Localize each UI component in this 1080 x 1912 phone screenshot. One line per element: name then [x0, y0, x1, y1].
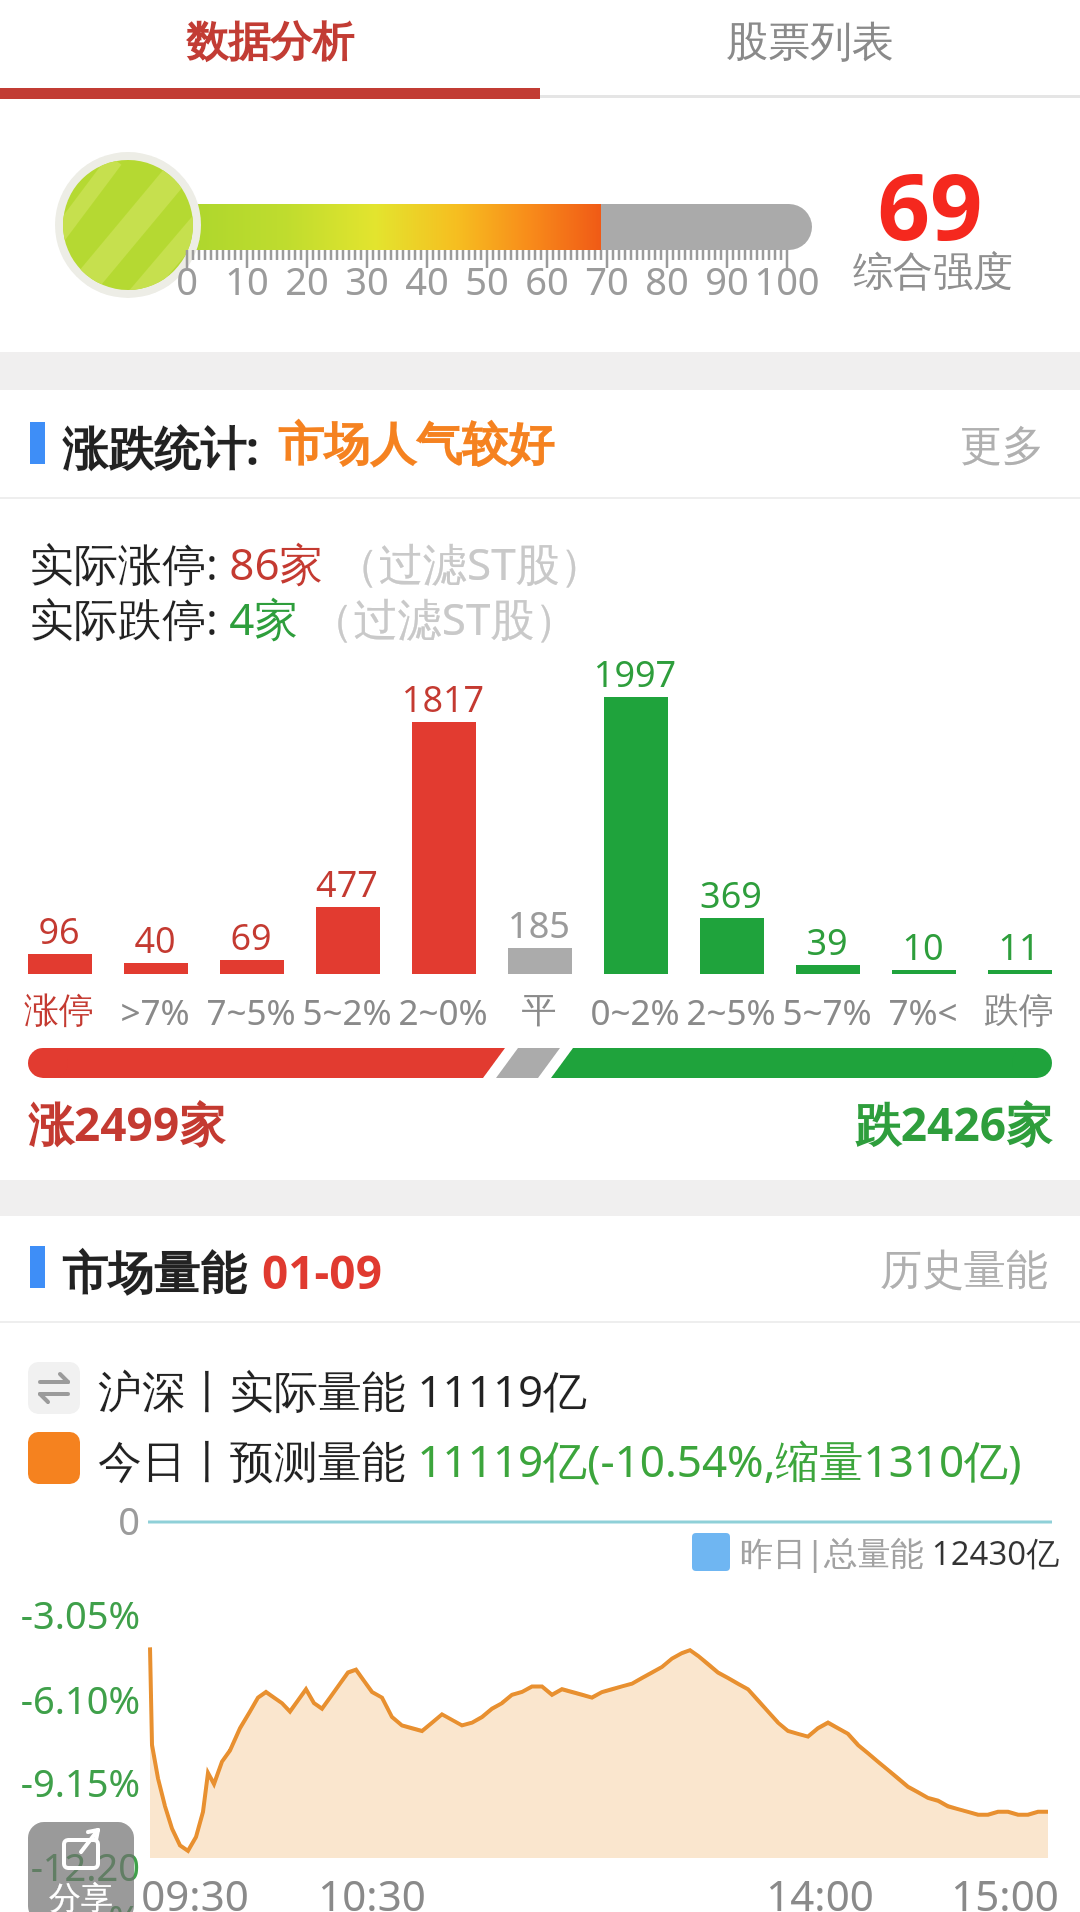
staticText: 分享 [28, 1878, 134, 1912]
staticText: -3.05% [20, 1588, 140, 1640]
staticText: 11 [959, 922, 1079, 971]
staticText: 15:00 [935, 1866, 1075, 1912]
staticText: -6.10% [20, 1673, 140, 1725]
staticText: 2~5% [671, 988, 791, 1036]
staticText: 历史量能 [880, 1244, 1048, 1297]
staticText: 09:30 [125, 1866, 265, 1912]
staticText: 7~5% [191, 988, 311, 1036]
staticText: 10 [863, 922, 983, 971]
staticText: 实际涨停: 86家 （过滤ST股） [30, 533, 604, 593]
button[interactable]: 数据分析 [0, 0, 540, 100]
staticText: 涨跌统计: [62, 416, 271, 479]
staticText: 5~7% [767, 988, 887, 1036]
staticText: 涨停 [0, 988, 119, 1032]
staticText: 涨2499家 [28, 1092, 226, 1155]
button[interactable]: 股票列表 [540, 0, 1080, 100]
staticText: 实际跌停: 4家 （过滤ST股） [30, 588, 579, 648]
staticText: 7%< [863, 988, 983, 1036]
staticText: 30 [317, 254, 417, 306]
staticText: 1997 [575, 649, 695, 698]
staticText: 69 [855, 142, 1005, 267]
staticText: 10 [197, 254, 297, 306]
staticText: >7% [95, 988, 215, 1036]
staticText: 39 [767, 917, 887, 966]
staticText: 01-09 [262, 1240, 382, 1303]
staticText: 14:00 [750, 1866, 890, 1912]
staticText: 80 [617, 254, 717, 306]
staticText: 市场人气较好 [278, 416, 554, 474]
staticText: 跌停 [959, 988, 1079, 1032]
button[interactable]: 市场量能 [0, 1216, 1080, 1324]
staticText: 数据分析 [0, 16, 540, 69]
staticText: 100 [737, 254, 837, 306]
staticText: 1817 [383, 674, 503, 723]
staticText: 跌2426家 [752, 1092, 1052, 1155]
staticText: 40 [377, 254, 477, 306]
staticText: 0~2% [575, 988, 695, 1036]
staticText: 市场量能 [62, 1240, 258, 1303]
staticText: 50 [437, 254, 537, 306]
staticText: 平 [479, 988, 599, 1032]
staticText: 60 [497, 254, 597, 306]
staticText: 0 [100, 1494, 140, 1546]
staticText: 0 [137, 254, 237, 306]
staticText: -12.20% [0, 1840, 140, 1912]
staticText: 96 [0, 906, 119, 955]
staticText: 477 [287, 859, 407, 908]
button[interactable]: 分享 [28, 1822, 134, 1912]
staticText: 10:30 [302, 1866, 442, 1912]
staticText: 2~0% [383, 988, 503, 1036]
staticText: 20 [257, 254, 357, 306]
staticText: 更多 [960, 420, 1044, 473]
staticText: 90 [677, 254, 777, 306]
staticText: 369 [671, 870, 791, 919]
staticText: 185 [479, 900, 599, 949]
staticText: -9.15% [20, 1756, 140, 1808]
staticText: 综合强度 [848, 246, 1018, 296]
staticText: 5~2% [287, 988, 407, 1036]
staticText: 69 [191, 912, 311, 961]
staticText: 70 [557, 254, 657, 306]
button[interactable]: 涨跌统计: [0, 390, 1080, 500]
staticText: 40 [95, 915, 215, 964]
staticText: 股票列表 [540, 16, 1080, 69]
staticText: 沪深丨实际量能 11119亿 [98, 1360, 588, 1420]
staticText: 昨日|总量能 12430亿 [740, 1530, 1060, 1575]
staticText: 今日丨预测量能 11119亿(-10.54%,缩量1310亿) [98, 1430, 1022, 1490]
